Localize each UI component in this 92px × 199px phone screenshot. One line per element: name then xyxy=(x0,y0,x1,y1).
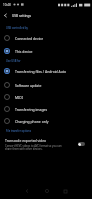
staticText: File transfer options xyxy=(6,129,31,133)
staticText: USB controlled by xyxy=(6,26,28,30)
staticText: Connected device xyxy=(15,36,44,41)
staticText: Transferring files / Android Auto xyxy=(15,69,67,74)
staticText: Charging phone only xyxy=(15,119,49,124)
button[interactable]: Connected device xyxy=(0,32,92,44)
staticText: MIDI xyxy=(15,95,23,100)
staticText: Software update xyxy=(15,83,42,88)
button[interactable]: Transcode exported video xyxy=(0,138,92,150)
button[interactable]: MIDI xyxy=(0,91,92,103)
button[interactable]: Transferring images xyxy=(0,103,92,115)
staticText: Use USB for xyxy=(6,59,21,63)
staticText: Transcode exported video xyxy=(5,138,47,143)
button[interactable]: Charging phone only xyxy=(0,115,92,127)
button[interactable]: Navigate up xyxy=(0,9,11,22)
button[interactable]: Home xyxy=(38,183,55,199)
button[interactable]: This device xyxy=(0,45,92,57)
staticText: Transferring images xyxy=(15,107,48,112)
staticText: This device xyxy=(15,49,33,54)
button[interactable]: Transcode exported video xyxy=(78,142,85,146)
staticText: Convert HEVC videos to AVC format so you… xyxy=(5,144,63,150)
staticText: 10:48 xyxy=(3,3,11,7)
button[interactable]: Transferring files / Android Auto xyxy=(0,65,92,77)
button[interactable]: Recents xyxy=(57,183,74,199)
staticText: USB settings xyxy=(12,14,31,18)
button[interactable]: Software update xyxy=(0,79,92,91)
